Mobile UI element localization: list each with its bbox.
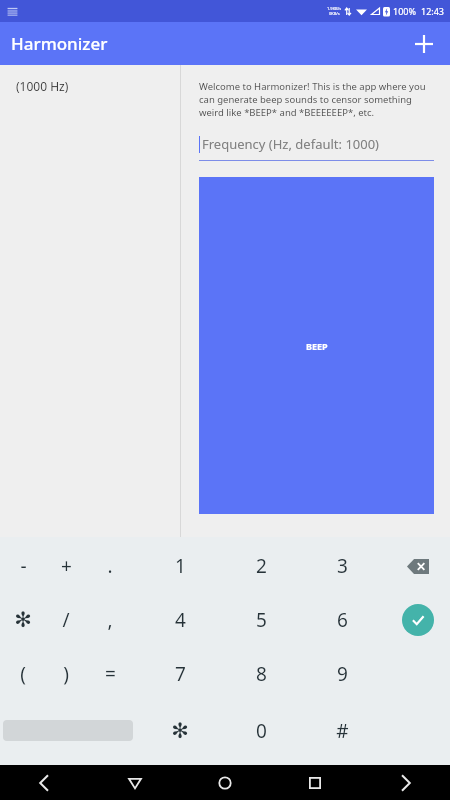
staticText: 7 <box>175 661 186 687</box>
button[interactable]: 0 <box>240 709 282 753</box>
button[interactable]: Frequency (Hz, default: 1000) <box>199 135 434 161</box>
staticText: 5 <box>256 607 267 633</box>
button[interactable]: - <box>2 544 44 588</box>
button[interactable]: BEEP <box>199 177 434 514</box>
button[interactable]: 9 <box>321 652 363 696</box>
staticText: 4 <box>175 607 186 633</box>
button[interactable]: Back <box>0 765 90 800</box>
button[interactable]: 5 <box>240 598 282 642</box>
button[interactable]: + <box>45 544 87 588</box>
staticText: 12:43 <box>421 5 445 17</box>
staticText: 1 <box>175 553 186 579</box>
button[interactable]: . <box>89 544 131 588</box>
button[interactable]: Forward <box>360 765 450 800</box>
button[interactable]: Add <box>406 26 442 62</box>
staticText: / <box>62 607 70 633</box>
staticText: 100% <box>393 5 416 17</box>
staticText: (1000 Hz) <box>16 78 69 94</box>
staticText: ✻ <box>171 719 189 743</box>
staticText: Frequency (Hz, default: 1000) <box>202 135 380 153</box>
staticText: 0KB/s <box>329 11 340 16</box>
button[interactable]: # <box>321 709 363 753</box>
button[interactable]: 4 <box>159 598 201 642</box>
staticText: 9 <box>337 661 348 687</box>
button[interactable]: ✻ <box>159 709 201 753</box>
button[interactable]: Recents <box>270 765 360 800</box>
button[interactable]: 1 <box>159 544 201 588</box>
staticText: + <box>61 553 72 579</box>
button[interactable]: 3 <box>321 544 363 588</box>
staticText: 6 <box>337 607 348 633</box>
button[interactable]: 2 <box>240 544 282 588</box>
button[interactable]: ✻ <box>2 598 44 642</box>
button[interactable]: / <box>45 598 87 642</box>
button[interactable]: ( <box>2 652 44 696</box>
staticText: 1.9KB/s <box>327 6 342 11</box>
button[interactable]: 8 <box>240 652 282 696</box>
staticText: . <box>107 553 113 579</box>
staticText: BEEP <box>306 340 328 352</box>
button[interactable]: Home <box>180 765 270 800</box>
staticText: ( <box>20 661 26 687</box>
staticText: 0 <box>256 718 267 744</box>
button[interactable]: Enter <box>400 602 436 638</box>
button[interactable]: 6 <box>321 598 363 642</box>
button[interactable]: , <box>89 598 131 642</box>
staticText: ✻ <box>14 608 32 632</box>
button[interactable]: Hide keyboard <box>90 765 180 800</box>
staticText: # <box>336 718 349 744</box>
button[interactable]: = <box>89 652 131 696</box>
staticText: 2 <box>256 553 267 579</box>
staticText: 8 <box>256 661 267 687</box>
button[interactable]: ) <box>45 652 87 696</box>
staticText: 3 <box>337 553 348 579</box>
staticText: Welcome to Harmonizer! This is the app w… <box>199 80 434 119</box>
staticText: , <box>107 607 113 633</box>
staticText: = <box>105 661 116 687</box>
staticText: Harmonizer <box>11 32 108 55</box>
staticText: ) <box>63 661 69 687</box>
staticText: - <box>20 553 27 579</box>
button[interactable]: 7 <box>159 652 201 696</box>
button[interactable]: Backspace <box>400 548 436 584</box>
